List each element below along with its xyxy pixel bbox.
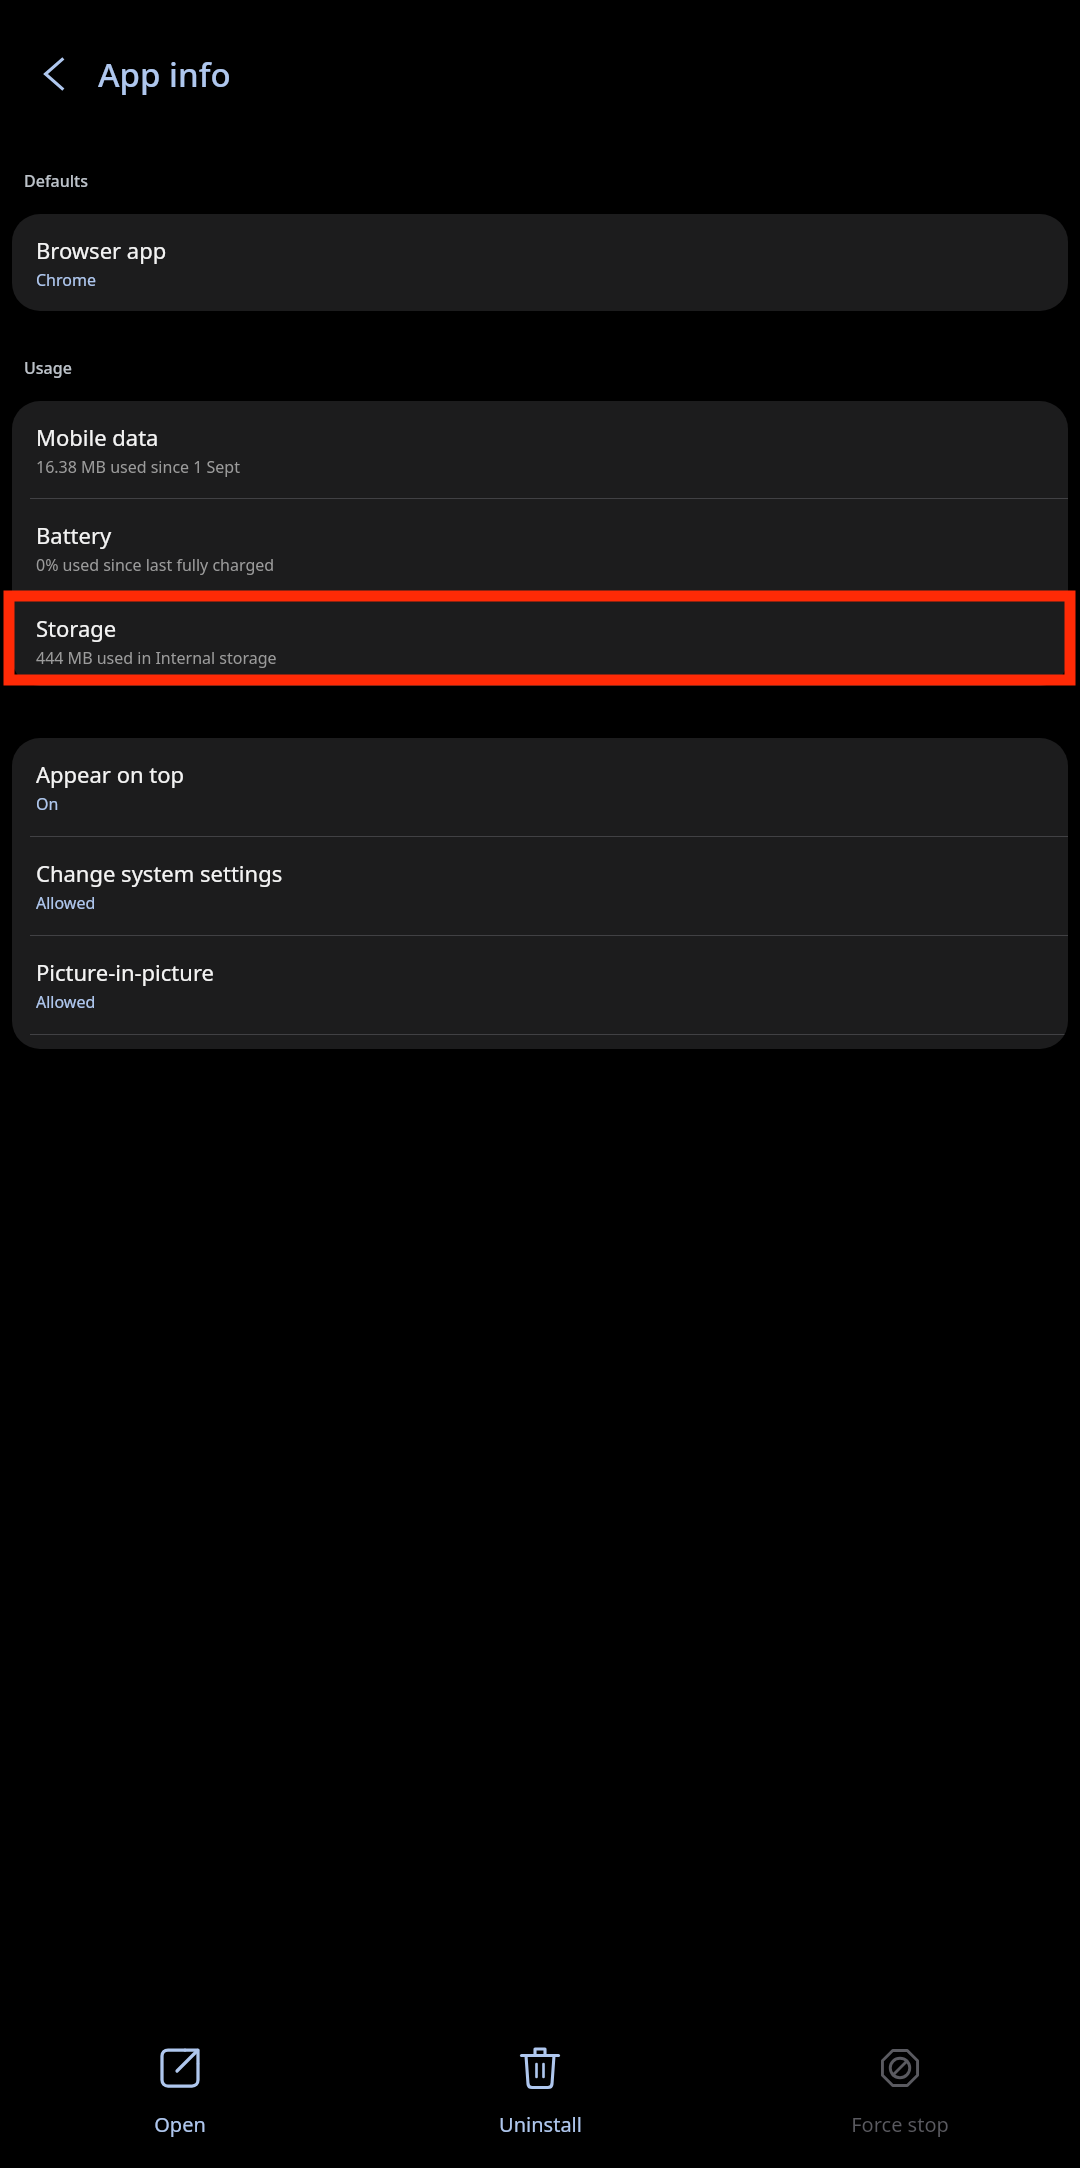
- staticText: Appear on top: [36, 759, 185, 789]
- button[interactable]: Appear on top: [12, 738, 1068, 836]
- staticText: On: [36, 793, 59, 815]
- button[interactable]: Open: [0, 2012, 360, 2168]
- staticText: Change system settings: [36, 858, 283, 888]
- staticText: Browser app: [36, 235, 167, 265]
- staticText: 444 MB used in Internal storage: [36, 647, 277, 669]
- button[interactable]: Picture-in-picture: [12, 936, 1068, 1034]
- staticText: Chrome: [36, 269, 96, 291]
- staticText: Battery: [36, 520, 112, 550]
- staticText: 16.38 MB used since 1 Sept: [36, 456, 240, 478]
- button[interactable]: Storage: [12, 596, 1068, 686]
- staticText: Uninstall: [499, 2111, 582, 2138]
- button[interactable]: Mobile data: [12, 401, 1068, 498]
- button[interactable]: Uninstall: [360, 2012, 720, 2168]
- button[interactable]: Battery: [12, 499, 1068, 596]
- staticText: 0% used since last fully charged: [36, 554, 275, 576]
- staticText: Usage: [24, 357, 72, 379]
- staticText: Open: [154, 2111, 206, 2138]
- staticText: Allowed: [36, 892, 96, 914]
- button[interactable]: Browser app: [12, 214, 1068, 311]
- button[interactable]: Force stop: [720, 2012, 1080, 2168]
- staticText: Mobile data: [36, 422, 159, 452]
- button[interactable]: Change system settings: [12, 837, 1068, 935]
- staticText: Allowed: [36, 991, 96, 1013]
- staticText: App info: [98, 52, 231, 97]
- staticText: Storage: [36, 613, 117, 643]
- staticText: Force stop: [851, 2111, 949, 2138]
- staticText: Defaults: [24, 170, 89, 192]
- staticText: Picture-in-picture: [36, 957, 214, 987]
- button[interactable]: Back: [22, 41, 88, 107]
